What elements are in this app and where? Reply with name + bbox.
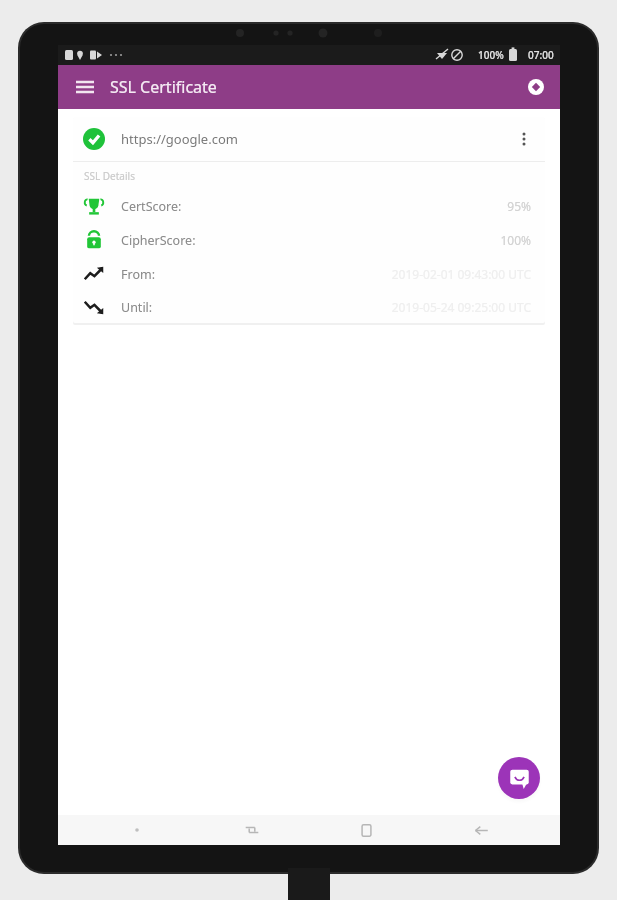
staticText: https://google.com bbox=[121, 130, 238, 148]
staticText: CertScore: bbox=[121, 198, 182, 215]
staticText: CipherScore: bbox=[121, 232, 196, 249]
button[interactable]: https://google.com bbox=[73, 117, 545, 161]
staticText: 2019-05-24 09:25:00 UTC bbox=[391, 299, 531, 315]
staticText: SSL Details bbox=[84, 169, 135, 183]
staticText: 2019-02-01 09:43:00 UTC bbox=[391, 266, 531, 282]
button[interactable]: Back bbox=[446, 815, 516, 845]
button[interactable]: From: bbox=[73, 257, 545, 291]
button[interactable]: CipherScore: bbox=[73, 223, 545, 257]
button[interactable]: Open navigation menu bbox=[68, 70, 102, 104]
button[interactable]: Information bbox=[520, 71, 552, 103]
staticText: SSL Certificate bbox=[110, 76, 217, 98]
button[interactable]: More options bbox=[507, 122, 541, 156]
staticText: 100% bbox=[478, 48, 504, 62]
staticText: 95% bbox=[507, 198, 531, 214]
button[interactable]: CertScore: bbox=[73, 189, 545, 223]
button[interactable]: Menu bbox=[102, 815, 172, 845]
staticText: 07:00 bbox=[528, 48, 554, 62]
button[interactable]: New message bbox=[498, 757, 540, 799]
staticText: From: bbox=[121, 266, 156, 283]
staticText: Until: bbox=[121, 299, 153, 316]
staticText: 100% bbox=[500, 232, 531, 248]
button[interactable]: Home bbox=[331, 815, 401, 845]
button[interactable]: Recent apps bbox=[217, 815, 287, 845]
button[interactable]: Until: bbox=[73, 291, 545, 323]
